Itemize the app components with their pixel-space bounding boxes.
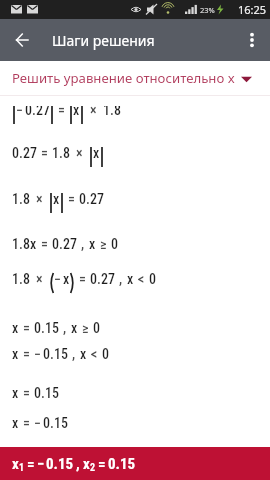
staticText: 16:25 — [238, 2, 267, 17]
staticText: Решить уравнение относительно x — [12, 69, 235, 87]
staticText: − — [34, 415, 41, 431]
staticText: 0.27 — [79, 191, 104, 207]
staticText: 1 — [19, 462, 25, 474]
staticText: , — [119, 271, 123, 287]
staticText: 1.8 — [12, 271, 30, 287]
staticText: , — [76, 455, 80, 473]
button[interactable]: Решить уравнение относительно x — [0, 61, 270, 95]
staticText: = — [23, 385, 30, 401]
staticText: = — [23, 320, 30, 336]
staticText: − — [37, 455, 45, 473]
staticText: 1.8x — [12, 236, 37, 252]
staticText: 1.8 — [103, 106, 121, 118]
staticText: x — [12, 455, 19, 473]
staticText: 1.8 — [52, 145, 70, 161]
staticText: 0 — [93, 320, 100, 336]
staticText: x — [12, 320, 19, 336]
staticText: x — [12, 346, 19, 362]
staticText: , — [81, 236, 85, 252]
staticText: = — [23, 346, 30, 362]
staticText: 0.27 — [52, 236, 77, 252]
staticText: x — [127, 271, 134, 287]
staticText: × — [90, 106, 97, 118]
staticText: 0.15 — [34, 320, 59, 336]
staticText: 0 — [149, 271, 156, 287]
staticText: x — [93, 145, 100, 161]
staticText: 2 — [90, 462, 96, 474]
staticText: = — [23, 415, 30, 431]
staticText: − — [54, 271, 61, 287]
staticText: = — [79, 271, 86, 287]
staticText: = — [68, 191, 75, 207]
staticText: , — [72, 346, 76, 362]
staticText: x — [89, 236, 96, 252]
staticText: ≥ — [82, 320, 89, 336]
staticText: x — [80, 346, 87, 362]
button[interactable]: More options — [230, 20, 270, 60]
staticText: x — [73, 106, 80, 118]
staticText: = — [41, 236, 48, 252]
staticText: x — [12, 415, 19, 431]
staticText: , — [63, 320, 67, 336]
staticText: 0.15 — [34, 385, 59, 401]
staticText: x — [63, 271, 70, 287]
staticText: 0.27 — [25, 106, 50, 118]
staticText: 0 — [111, 236, 118, 252]
staticText: 23% — [200, 5, 215, 15]
staticText: ≥ — [100, 236, 107, 252]
staticText: × — [36, 191, 43, 207]
staticText: 0.15 — [108, 455, 136, 473]
staticText: 0.15 — [43, 415, 68, 431]
staticText: 0 — [102, 346, 109, 362]
staticText: 0.27 — [90, 271, 115, 287]
staticText: × — [76, 145, 83, 161]
staticText: = — [58, 106, 65, 118]
staticText: < — [91, 346, 98, 362]
staticText: − — [34, 346, 41, 362]
staticText: x — [53, 191, 60, 207]
staticText: 0.15 — [46, 455, 74, 473]
staticText: Шаги решения — [52, 31, 155, 50]
staticText: x — [83, 455, 90, 473]
staticText: = — [98, 455, 106, 473]
staticText: 1.8 — [12, 191, 30, 207]
button[interactable]: x — [0, 447, 270, 480]
button[interactable]: Back — [0, 20, 40, 60]
staticText: x — [71, 320, 78, 336]
staticText: 0.27 — [12, 145, 37, 161]
staticText: < — [138, 271, 145, 287]
staticText: − — [16, 106, 23, 118]
staticText: × — [36, 271, 43, 287]
staticText: x — [12, 385, 19, 401]
staticText: = — [27, 455, 35, 473]
staticText: 0.15 — [43, 346, 68, 362]
staticText: = — [41, 145, 48, 161]
